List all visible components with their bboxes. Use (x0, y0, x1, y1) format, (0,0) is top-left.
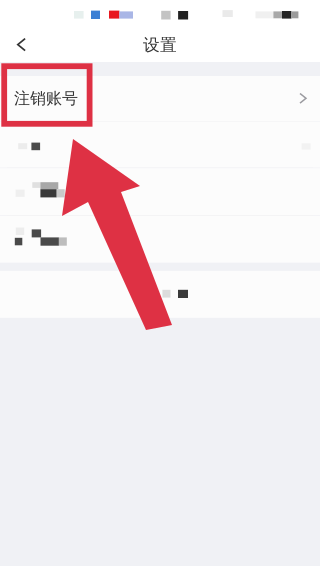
button[interactable]: 注销账号 (0, 76, 320, 121)
staticText: 设置 (143, 34, 177, 55)
button[interactable]: Back (0, 28, 44, 62)
staticText: 注销账号 (14, 88, 78, 109)
